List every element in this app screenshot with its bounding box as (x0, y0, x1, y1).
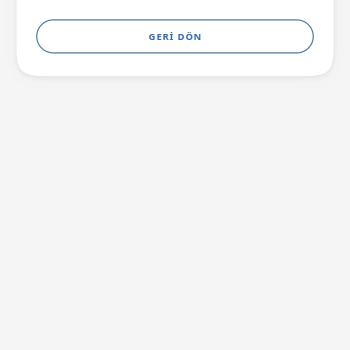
staticText: GERİ DÖN (148, 30, 201, 43)
button[interactable]: GERİ DÖN (37, 20, 313, 53)
